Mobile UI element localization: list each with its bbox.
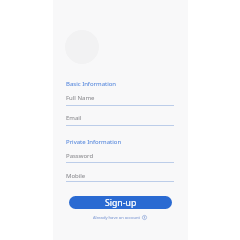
button[interactable]: Full Name bbox=[66, 94, 174, 107]
button[interactable]: Email bbox=[66, 114, 174, 127]
button[interactable]: Sign-up bbox=[69, 196, 172, 209]
staticText: Sign-up bbox=[105, 197, 137, 209]
staticText: Full Name bbox=[66, 94, 95, 102]
staticText: Email bbox=[66, 114, 82, 122]
staticText: Private Information bbox=[66, 138, 122, 146]
other: More info bbox=[142, 215, 147, 220]
staticText: Basic Information bbox=[66, 80, 117, 88]
staticText: Already have an account bbox=[93, 215, 140, 221]
button[interactable]: Password bbox=[66, 152, 174, 164]
staticText: Password bbox=[66, 152, 94, 160]
staticText: Mobile bbox=[66, 172, 86, 180]
button[interactable]: Mobile bbox=[66, 172, 174, 183]
button[interactable]: Already have an account bbox=[93, 212, 149, 223]
